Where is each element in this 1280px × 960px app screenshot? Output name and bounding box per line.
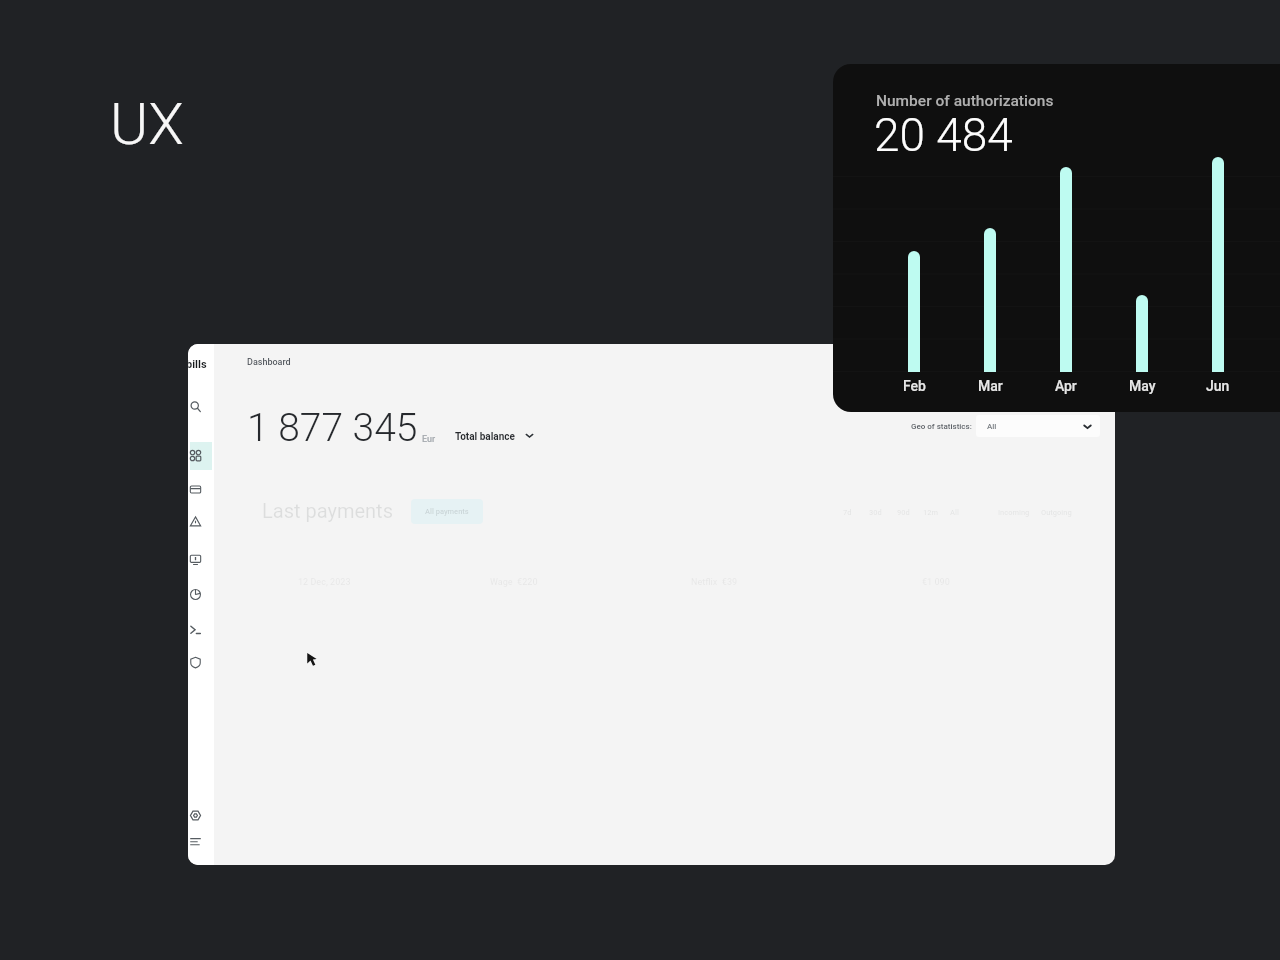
staticText: UX <box>110 90 184 158</box>
button[interactable]: Total balance <box>455 431 534 443</box>
button[interactable]: bills home <box>188 358 210 371</box>
button[interactable]: Menu <box>188 830 214 852</box>
staticText: Last payments <box>262 499 393 522</box>
staticText: bills <box>188 358 207 371</box>
staticText: Wage €220 <box>490 577 538 588</box>
button[interactable]: Console <box>188 618 214 640</box>
staticText: All payments <box>425 507 469 516</box>
button[interactable]: 90d <box>897 504 910 520</box>
staticText: Apr <box>1055 378 1077 394</box>
staticText: Mar <box>978 378 1003 394</box>
button[interactable]: 7d <box>843 504 852 520</box>
button[interactable]: All <box>950 504 959 520</box>
staticText: 20 484 <box>874 108 1013 162</box>
staticText: Number of authorizations <box>876 92 1054 110</box>
button[interactable]: Dashboard <box>188 444 214 466</box>
staticText: 7d <box>843 508 852 517</box>
staticText: 12m <box>923 508 939 517</box>
button[interactable]: Analytics <box>188 583 214 605</box>
staticText: 1 877 345 <box>247 405 418 451</box>
staticText: Geo of statistics: <box>911 422 972 431</box>
staticText: All <box>950 508 959 517</box>
button[interactable]: All payments <box>411 499 483 524</box>
staticText: Incoming <box>998 508 1030 517</box>
button[interactable]: Dashboard <box>247 355 293 370</box>
button[interactable]: 12m <box>923 504 939 520</box>
staticText: Eur <box>422 434 436 445</box>
staticText: €1 090 <box>922 577 950 588</box>
button[interactable]: Settings <box>188 804 214 826</box>
staticText: 12 Dec, 2023 <box>298 577 351 588</box>
button[interactable]: Incoming <box>998 504 1030 520</box>
staticText: Jun <box>1206 378 1230 394</box>
staticText: 90d <box>897 508 910 517</box>
staticText: Total balance <box>455 431 515 443</box>
other: Pointer <box>307 653 320 666</box>
button[interactable]: Outgoing <box>1041 504 1072 520</box>
button[interactable]: Monitor <box>188 548 214 570</box>
staticText: Outgoing <box>1041 508 1072 517</box>
staticText: May <box>1129 378 1156 394</box>
staticText: All <box>987 422 997 431</box>
button[interactable]: Security <box>188 651 214 673</box>
button[interactable]: All <box>976 415 1100 437</box>
button[interactable]: Alerts <box>188 510 214 532</box>
button[interactable]: 30d <box>869 504 882 520</box>
button[interactable]: Search <box>188 395 214 417</box>
staticText: 30d <box>869 508 882 517</box>
staticText: Netflix €39 <box>691 577 738 588</box>
staticText: Feb <box>903 378 926 394</box>
staticText: Dashboard <box>247 357 291 368</box>
button[interactable]: Cards <box>188 478 214 500</box>
